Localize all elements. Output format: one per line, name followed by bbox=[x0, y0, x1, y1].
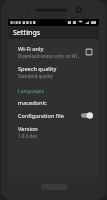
staticText: Version bbox=[18, 125, 38, 132]
staticText: 1.0.0-dev bbox=[18, 133, 38, 139]
button[interactable]: Wi-Fi only bbox=[8, 42, 99, 62]
staticText: Download voices only on Wi-Fi bbox=[18, 53, 81, 59]
button[interactable]: Version bbox=[8, 122, 99, 142]
button[interactable]: macedonic bbox=[8, 96, 99, 109]
staticText: Standard quality bbox=[18, 73, 53, 79]
other: Wi-Fi only checkbox bbox=[85, 48, 93, 56]
other: Configuration file switch bbox=[81, 112, 93, 119]
staticText: Configuration file bbox=[18, 112, 64, 119]
staticText: Settings bbox=[13, 28, 41, 38]
staticText: macedonic bbox=[18, 99, 47, 106]
button[interactable]: Speech quality bbox=[8, 62, 99, 82]
staticText: Speech quality bbox=[18, 65, 57, 72]
button[interactable]: Configuration file bbox=[8, 109, 99, 122]
staticText: Languages bbox=[18, 88, 45, 95]
staticText: Wi-Fi only bbox=[18, 45, 44, 52]
